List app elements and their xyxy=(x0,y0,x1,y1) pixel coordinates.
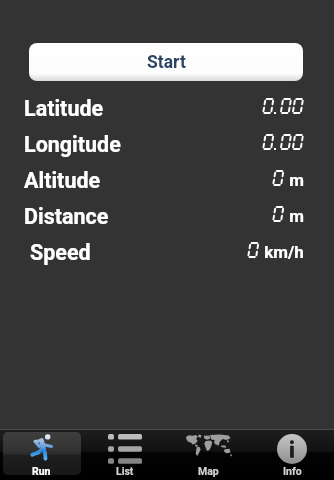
button[interactable]: Info xyxy=(250,430,334,480)
staticText: List xyxy=(116,465,134,477)
staticText: Speed xyxy=(30,240,91,265)
staticText: m xyxy=(285,206,304,226)
staticText: Longitude xyxy=(24,132,121,157)
staticText: km/h xyxy=(260,242,304,262)
staticText: Run xyxy=(32,465,51,477)
button[interactable]: List xyxy=(83,430,166,480)
button[interactable]: Map xyxy=(166,430,250,480)
staticText: Altitude xyxy=(24,168,101,193)
button[interactable]: Start xyxy=(29,43,303,81)
staticText: Map xyxy=(198,465,219,477)
staticText: Info xyxy=(283,465,302,477)
button[interactable]: Run xyxy=(0,430,83,480)
staticText: Distance xyxy=(24,204,109,229)
staticText: Start xyxy=(147,52,186,73)
staticText: m xyxy=(285,170,304,190)
staticText: Latitude xyxy=(24,96,104,121)
